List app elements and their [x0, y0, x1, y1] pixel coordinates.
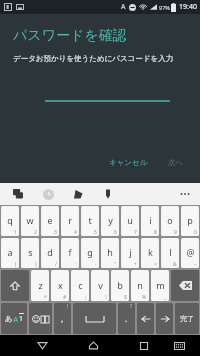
button[interactable]: n — [131, 270, 149, 301]
button[interactable]: Left — [137, 303, 154, 334]
button[interactable]: Input mode — [1, 303, 27, 334]
staticText: c — [78, 279, 83, 291]
staticText: A — [13, 314, 19, 324]
button[interactable]: v — [91, 270, 109, 301]
button[interactable]: b — [111, 270, 129, 301]
button[interactable]: , — [54, 303, 71, 334]
button[interactable]: 完了 — [175, 303, 199, 334]
button[interactable]: s — [21, 238, 39, 268]
staticText: ~ — [194, 261, 197, 268]
button[interactable]: Emoji — [29, 303, 52, 334]
button[interactable]: x — [51, 270, 69, 301]
staticText: $ — [124, 294, 127, 301]
staticText: i — [149, 214, 152, 226]
staticText: o — [167, 214, 173, 226]
button[interactable]: 次へ — [162, 154, 190, 171]
button[interactable]: @ — [181, 238, 199, 268]
staticText: w — [26, 214, 34, 226]
button[interactable]: m — [151, 270, 169, 301]
button[interactable]: o — [161, 206, 179, 236]
staticText: = — [154, 261, 157, 268]
button[interactable] — [45, 88, 170, 102]
button[interactable]: Shift — [1, 270, 29, 301]
staticText: v — [98, 279, 103, 291]
staticText: - — [95, 261, 97, 268]
button[interactable]: i — [141, 206, 159, 236]
staticText: b — [117, 279, 123, 291]
button[interactable]: w — [21, 206, 39, 236]
staticText: _ — [164, 294, 167, 301]
staticText: l — [169, 246, 172, 258]
button[interactable]: キャンセル — [103, 154, 154, 171]
staticText: . — [125, 313, 128, 324]
button[interactable]: j — [121, 238, 139, 268]
button[interactable]: h — [101, 238, 119, 268]
button[interactable]: k — [141, 238, 159, 268]
button[interactable]: Theme — [68, 184, 88, 204]
button[interactable]: c — [71, 270, 89, 301]
staticText: & — [173, 261, 177, 268]
staticText: パスワードを確認 — [13, 27, 127, 45]
staticText: データお預かりを使うためにパスコードを入力 — [13, 54, 174, 63]
staticText: 1 — [19, 314, 24, 324]
staticText: f — [68, 246, 72, 258]
button[interactable]: . — [118, 303, 135, 334]
staticText: 完了 — [180, 314, 194, 323]
button[interactable]: Recents — [133, 335, 155, 356]
staticText: k — [148, 246, 153, 258]
button[interactable]: u — [121, 206, 139, 236]
button[interactable]: a — [1, 238, 19, 268]
staticText: 3 — [54, 229, 57, 236]
staticText: h — [107, 246, 113, 258]
staticText: 2 — [34, 229, 37, 236]
button[interactable]: Space — [73, 303, 116, 334]
button[interactable]: Handwriting — [98, 184, 118, 204]
staticText: m — [156, 279, 165, 291]
staticText: 7 — [134, 229, 137, 236]
button[interactable]: Conversion candidates — [8, 184, 28, 204]
button[interactable]: g — [81, 238, 99, 268]
staticText: / — [55, 261, 57, 268]
button[interactable]: d — [41, 238, 59, 268]
staticText: y — [108, 214, 113, 226]
staticText: r — [68, 214, 72, 226]
staticText: ! — [67, 303, 69, 310]
staticText: ( — [15, 261, 17, 268]
staticText: \ — [105, 294, 107, 301]
button[interactable]: t — [81, 206, 99, 236]
staticText: あ — [5, 314, 13, 323]
button[interactable]: p — [181, 206, 199, 236]
staticText: s — [28, 246, 33, 258]
staticText: 19:40 — [179, 2, 197, 12]
staticText: d — [47, 246, 53, 258]
staticText: " — [114, 261, 117, 268]
button[interactable]: f — [61, 238, 79, 268]
staticText: , — [61, 313, 64, 324]
button[interactable]: e — [41, 206, 59, 236]
button[interactable]: Home — [82, 335, 104, 356]
button[interactable]: History — [38, 184, 58, 204]
button[interactable]: Back — [31, 335, 53, 356]
button[interactable]: l — [161, 238, 179, 268]
button[interactable]: Right — [156, 303, 173, 334]
staticText: 8 — [154, 229, 157, 236]
staticText: t — [88, 214, 92, 226]
staticText: 次へ — [168, 158, 184, 167]
staticText: * — [44, 294, 47, 301]
staticText: e — [47, 214, 53, 226]
button[interactable]: z — [31, 270, 49, 301]
staticText: a — [7, 246, 13, 258]
staticText: 0 — [194, 229, 197, 236]
button[interactable]: More options — [176, 185, 194, 203]
staticText: g — [87, 246, 93, 258]
staticText: u — [127, 214, 133, 226]
button[interactable]: Hide keyboard — [168, 335, 190, 356]
staticText: x — [58, 279, 63, 291]
staticText: p — [187, 214, 193, 226]
staticText: ? — [130, 303, 133, 310]
staticText: n — [137, 279, 143, 291]
button[interactable]: q — [1, 206, 19, 236]
button[interactable]: r — [61, 206, 79, 236]
button[interactable]: y — [101, 206, 119, 236]
button[interactable]: Backspace — [171, 270, 199, 301]
